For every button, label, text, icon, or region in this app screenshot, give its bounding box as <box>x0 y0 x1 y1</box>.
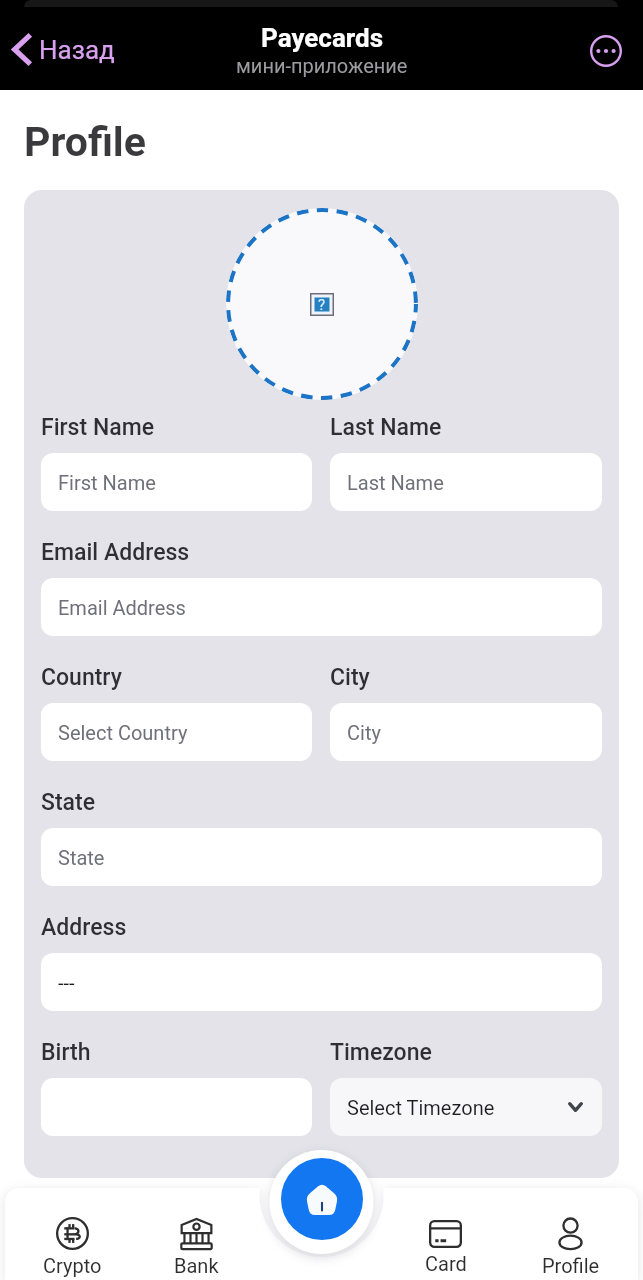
staticText: ? <box>318 296 326 314</box>
staticText: Profile <box>542 1254 600 1277</box>
staticText: Select Country <box>58 721 188 744</box>
staticText: City <box>347 721 381 744</box>
button[interactable]: Bank <box>134 1218 258 1277</box>
button[interactable]: Select Timezone <box>330 1078 602 1136</box>
button[interactable]: Last Name <box>330 453 602 511</box>
staticText: Email Address <box>41 539 190 566</box>
staticText: State <box>41 789 96 816</box>
staticText: Timezone <box>330 1039 432 1066</box>
staticText: Card <box>425 1252 467 1275</box>
staticText: Email Address <box>58 596 186 619</box>
staticText: City <box>330 664 370 691</box>
button[interactable]: Crypto <box>10 1217 134 1277</box>
staticText: Payecards <box>261 23 384 53</box>
staticText: мини-приложение <box>236 54 408 77</box>
button[interactable]: Card <box>383 1220 508 1275</box>
button[interactable]: First Name <box>41 453 312 511</box>
staticText: Last Name <box>330 414 442 441</box>
staticText: Address <box>41 914 127 941</box>
button[interactable]: Select Country <box>41 703 312 761</box>
staticText: --- <box>58 971 75 994</box>
button[interactable]: Change profile photo <box>226 208 418 400</box>
button[interactable]: More options <box>586 31 626 71</box>
staticText: Назад <box>39 35 115 65</box>
button[interactable]: Profile <box>508 1217 633 1277</box>
staticText: Country <box>41 664 122 691</box>
staticText: Birth <box>41 1039 91 1066</box>
button[interactable]: City <box>330 703 602 761</box>
button[interactable]: Email Address <box>41 578 602 636</box>
staticText: First Name <box>41 414 155 441</box>
staticText: Last Name <box>347 471 444 494</box>
staticText: Bank <box>174 1254 219 1277</box>
button[interactable]: Назад <box>6 26 121 73</box>
button[interactable]: Home <box>281 1158 363 1240</box>
staticText: Crypto <box>43 1254 102 1277</box>
staticText: State <box>58 846 105 869</box>
staticText: Select Timezone <box>347 1096 495 1119</box>
button[interactable]: State <box>41 828 602 886</box>
button[interactable]: --- <box>41 953 602 1011</box>
staticText: First Name <box>58 471 156 494</box>
staticText: Profile <box>24 118 146 166</box>
